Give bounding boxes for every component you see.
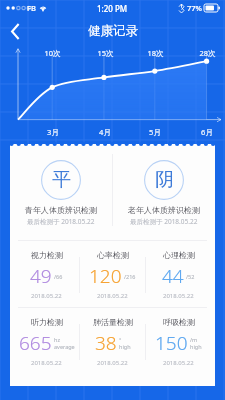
staticText: ° [119, 336, 122, 343]
button[interactable]: 心率检测 [80, 245, 145, 305]
button[interactable]: 肺活量检测 [80, 312, 145, 372]
staticText: 2018.05.22 [31, 292, 62, 300]
staticText: 28次 [199, 48, 216, 58]
staticText: 1:20 PM [97, 3, 128, 14]
staticText: 肺活量检测 [93, 317, 133, 327]
staticText: 2018.05.22 [163, 359, 194, 367]
staticText: high [190, 343, 202, 350]
button[interactable]: 听力检测 [14, 312, 79, 372]
staticText: 视力检测 [31, 250, 63, 260]
staticText: 青年人体质辨识检测 [25, 205, 97, 215]
button[interactable]: Back [0, 16, 30, 46]
staticText: 120 [89, 263, 122, 289]
button[interactable]: 阴 [113, 154, 215, 232]
staticText: 4月 [99, 127, 111, 137]
staticText: 阴 [155, 168, 174, 192]
staticText: 15次 [97, 48, 114, 58]
staticText: 2018.05.22 [97, 359, 128, 367]
staticText: 最后检测于 2018.05.22 [130, 217, 198, 226]
staticText: /66 [54, 273, 63, 280]
staticText: 健康记录 [88, 23, 138, 39]
staticText: 18次 [147, 48, 164, 58]
staticText: 2018.05.22 [97, 292, 128, 300]
staticText: 5月 [149, 127, 161, 137]
staticText: 6月 [201, 127, 213, 137]
button[interactable]: 平 [10, 154, 112, 232]
staticText: 心理检测 [163, 250, 195, 260]
button[interactable]: 呼吸检测 [146, 312, 211, 372]
button[interactable]: 心理检测 [146, 245, 211, 305]
button[interactable]: 视力检测 [14, 245, 79, 305]
staticText: 49 [30, 263, 52, 289]
staticText: 10次 [44, 48, 61, 58]
staticText: 平 [52, 168, 71, 192]
staticText: /m [190, 336, 198, 343]
staticText: 2018.05.22 [31, 359, 62, 367]
staticText: 44 [162, 263, 184, 289]
staticText: /216 [124, 273, 136, 280]
staticText: 3月 [47, 127, 59, 137]
staticText: 呼吸检测 [163, 317, 195, 327]
staticText: 老年人体质辨识检测 [128, 205, 200, 215]
staticText: 665 [19, 330, 52, 356]
staticText: 听力检测 [31, 317, 63, 327]
staticText: average [54, 343, 75, 350]
staticText: 77% [187, 3, 202, 13]
staticText: 最后检测于 2018.05.22 [27, 217, 95, 226]
staticText: FB [27, 3, 36, 13]
staticText: hz [54, 336, 60, 343]
staticText: /52 [186, 273, 195, 280]
staticText: 38 [95, 330, 117, 356]
staticText: 150 [155, 330, 188, 356]
staticText: high [119, 343, 131, 350]
staticText: 心率检测 [97, 250, 129, 260]
staticText: 2018.05.22 [163, 292, 194, 300]
